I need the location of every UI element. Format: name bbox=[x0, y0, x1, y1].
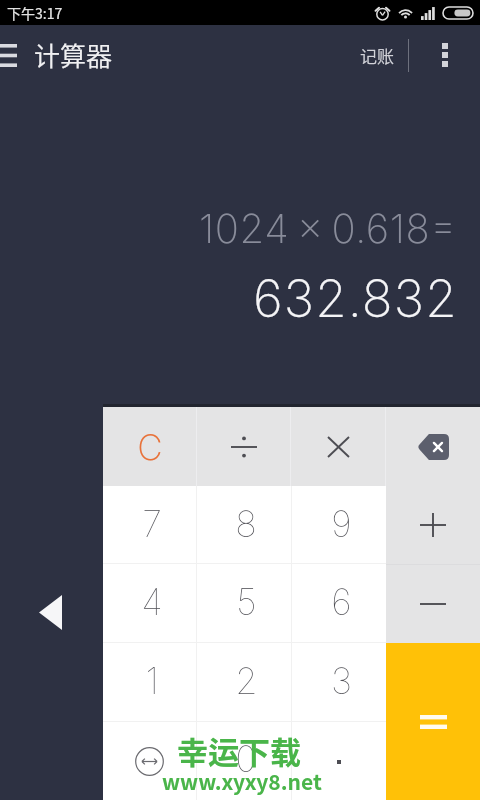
staticText: C bbox=[137, 426, 163, 468]
staticText: 计算器 bbox=[34, 36, 113, 74]
staticText: 4 bbox=[141, 580, 163, 624]
staticText: 9 bbox=[331, 502, 352, 546]
staticText: www.xyxy8.net bbox=[162, 766, 322, 796]
staticText: 幸运下载 bbox=[177, 728, 301, 773]
staticText: 5 bbox=[236, 580, 257, 624]
staticText: 6 bbox=[331, 580, 352, 624]
button[interactable]: 7 bbox=[103, 486, 196, 563]
button[interactable]: Multiply bbox=[291, 407, 385, 486]
button[interactable]: C bbox=[103, 407, 196, 486]
staticText: 1 bbox=[145, 659, 159, 703]
staticText: 7 bbox=[142, 502, 162, 546]
button[interactable]: 4 bbox=[103, 564, 196, 642]
button[interactable]: 5 bbox=[197, 564, 291, 642]
staticText: 8 bbox=[235, 502, 257, 546]
button[interactable]: More options bbox=[423, 33, 467, 77]
button[interactable]: Switch bbox=[103, 722, 196, 800]
button[interactable]: 9 bbox=[292, 486, 386, 563]
button[interactable]: Minus bbox=[386, 565, 480, 643]
button[interactable]: 0 bbox=[197, 722, 291, 800]
staticText: 1024 × 0.618= bbox=[199, 204, 457, 252]
button[interactable]: Divide bbox=[197, 407, 290, 486]
button[interactable]: Menu bbox=[0, 37, 26, 73]
staticText: 3 bbox=[331, 659, 352, 703]
button[interactable]: 1 bbox=[103, 643, 196, 721]
button[interactable]: Decimal point bbox=[292, 722, 386, 800]
button[interactable]: Backspace bbox=[386, 407, 480, 486]
button[interactable]: Equals bbox=[386, 643, 480, 800]
button[interactable]: 8 bbox=[197, 486, 291, 563]
staticText: 0 bbox=[235, 737, 257, 781]
button[interactable]: Plus bbox=[386, 486, 480, 564]
staticText: 下午3:17 bbox=[7, 3, 63, 23]
staticText: 记账 bbox=[360, 43, 394, 68]
button[interactable]: Back bbox=[26, 586, 76, 640]
button[interactable]: 6 bbox=[292, 564, 386, 642]
button[interactable]: 2 bbox=[197, 643, 291, 721]
button[interactable]: 记账 bbox=[354, 35, 400, 76]
button[interactable]: 3 bbox=[292, 643, 386, 721]
staticText: 2 bbox=[235, 659, 258, 703]
staticText: 632.832 bbox=[253, 268, 458, 330]
